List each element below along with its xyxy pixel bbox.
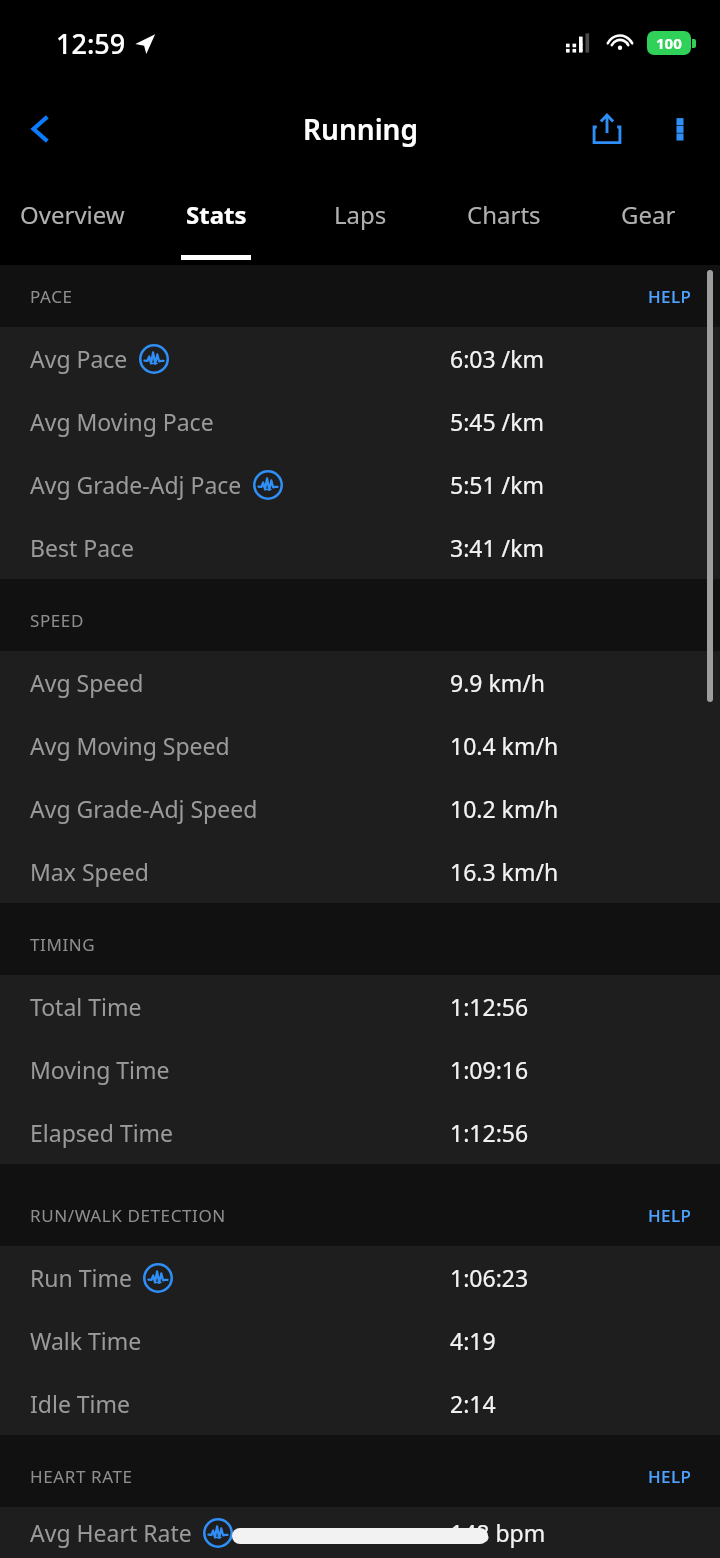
staticText: Avg Pace	[30, 343, 128, 374]
staticText: 148 bpm	[450, 1517, 546, 1548]
staticText: Idle Time	[30, 1388, 131, 1419]
button[interactable]: More options	[654, 103, 706, 155]
staticText: Avg Grade-Adj Pace	[30, 469, 242, 500]
staticText: 1:06:23	[450, 1262, 529, 1293]
staticText: 10.2 km/h	[450, 793, 559, 824]
staticText: HELP	[648, 285, 692, 308]
staticText: Avg Moving Pace	[30, 406, 214, 437]
staticText: 16.3 km/h	[450, 856, 559, 887]
button[interactable]: Avg Pace	[0, 327, 720, 390]
staticText: HEART RATE	[30, 1465, 133, 1488]
button[interactable]: Max Speed	[0, 840, 720, 903]
button[interactable]: Idle Time	[0, 1372, 720, 1435]
button[interactable]: Stats	[144, 172, 288, 265]
staticText: 2:14	[450, 1388, 496, 1419]
staticText: HELP	[648, 1204, 692, 1227]
staticText: 6:03 /km	[450, 343, 544, 374]
staticText: 10.4 km/h	[450, 730, 559, 761]
staticText: 3:41 /km	[450, 532, 544, 563]
button[interactable]: Charts	[432, 172, 576, 265]
staticText: Charts	[467, 198, 541, 231]
button[interactable]: Total Time	[0, 975, 720, 1038]
button[interactable]: Avg Moving Pace	[0, 390, 720, 453]
staticText: 1:09:16	[450, 1054, 529, 1085]
staticText: Total Time	[30, 991, 142, 1022]
button[interactable]: Share	[580, 102, 634, 156]
staticText: 1:12:56	[450, 991, 529, 1022]
button[interactable]: HELP	[620, 1453, 720, 1500]
staticText: Stats	[186, 198, 247, 231]
button[interactable]: HELP	[620, 273, 720, 320]
staticText: Overview	[20, 198, 125, 231]
button[interactable]: Moving Time	[0, 1038, 720, 1101]
button[interactable]: HELP	[620, 1192, 720, 1239]
button[interactable]: Avg Speed	[0, 651, 720, 714]
staticText: 5:45 /km	[450, 406, 544, 437]
staticText: Gear	[621, 198, 676, 231]
button[interactable]: Best Pace	[0, 516, 720, 579]
button[interactable]: Avg Grade-Adj Speed	[0, 777, 720, 840]
staticText: PACE	[30, 285, 73, 308]
button[interactable]: Avg Grade-Adj Pace	[0, 453, 720, 516]
staticText: 1:12:56	[450, 1117, 529, 1148]
button[interactable]: Laps	[288, 172, 432, 265]
staticText: Laps	[334, 198, 387, 231]
button[interactable]: Overview	[0, 172, 144, 265]
staticText: Avg Moving Speed	[30, 730, 230, 761]
staticText: Elapsed Time	[30, 1117, 174, 1148]
staticText: Walk Time	[30, 1325, 142, 1356]
button[interactable]: Avg Moving Speed	[0, 714, 720, 777]
button[interactable]: Elapsed Time	[0, 1101, 720, 1164]
staticText: TIMING	[30, 933, 96, 956]
staticText: Running	[303, 110, 418, 148]
staticText: 9.9 km/h	[450, 667, 546, 698]
staticText: Moving Time	[30, 1054, 170, 1085]
staticText: HELP	[648, 1465, 692, 1488]
staticText: 4:19	[450, 1325, 496, 1356]
staticText: Avg Speed	[30, 667, 144, 698]
staticText: 5:51 /km	[450, 469, 544, 500]
staticText: Avg Heart Rate	[30, 1517, 192, 1548]
staticText: 12:59	[56, 25, 126, 62]
button[interactable]: Gear	[576, 172, 720, 265]
button[interactable]: Run Time	[0, 1246, 720, 1309]
staticText: Best Pace	[30, 532, 135, 563]
staticText: Run Time	[30, 1262, 132, 1293]
staticText: RUN/WALK DETECTION	[30, 1204, 226, 1227]
button[interactable]: Walk Time	[0, 1309, 720, 1372]
staticText: 100	[656, 33, 682, 53]
staticText: SPEED	[30, 609, 84, 632]
button[interactable]: Avg Heart Rate	[0, 1507, 720, 1558]
button[interactable]: Back	[14, 103, 66, 155]
staticText: Max Speed	[30, 856, 149, 887]
staticText: Avg Grade-Adj Speed	[30, 793, 258, 824]
